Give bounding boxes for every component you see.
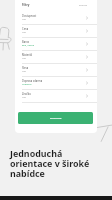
button[interactable]: Dostupnost [15,12,97,25]
staticText: Vše [22,30,26,33]
button[interactable]: Barva [15,38,97,51]
staticText: Vše [22,56,26,59]
staticText: Bílá, Černá [22,43,35,46]
staticText: Vše [22,17,26,20]
staticText: Cena [22,27,29,31]
button[interactable]: Značka [15,90,97,103]
staticText: Vše [22,69,26,72]
button[interactable]: Cena [15,25,97,38]
staticText: Dostupnost [22,14,37,18]
staticText: Vybráno [22,82,32,85]
button[interactable]: FILTROVAT [18,112,93,124]
staticText: Jednoduchá orientace v široké nabídce [10,147,92,180]
button[interactable]: Sleva [15,64,97,77]
button[interactable]: zrušit vše [79,4,87,6]
staticText: Doprava zdarma [22,79,43,83]
staticText: Sleva [22,66,29,70]
staticText: Materiál [22,53,33,57]
staticText: Filtry [22,3,30,7]
button[interactable]: Doprava zdarma [15,77,97,90]
staticText: Značka [22,92,31,96]
button[interactable]: Materiál [15,51,97,64]
staticText: FILTROVAT [50,117,62,120]
staticText: Vše [22,95,26,98]
staticText: Barva [22,40,29,44]
